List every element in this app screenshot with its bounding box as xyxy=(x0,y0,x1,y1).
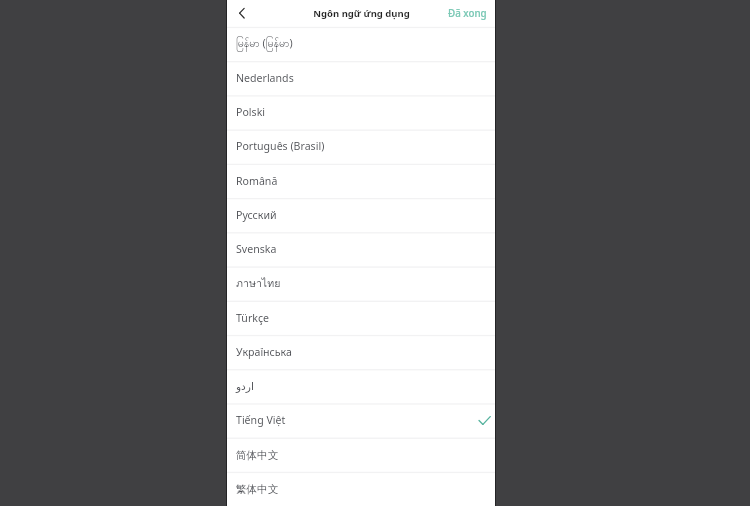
staticText: Română xyxy=(236,174,491,188)
button[interactable]: Tiếng Việt xyxy=(226,403,496,437)
button[interactable]: Đã xong xyxy=(440,3,496,24)
staticText: Tiếng Việt xyxy=(236,413,478,427)
staticText: Đã xong xyxy=(448,7,487,20)
staticText: မြန်မာ (မြန်မာ) xyxy=(236,36,491,53)
staticText: Українська xyxy=(236,345,491,359)
staticText: اردو xyxy=(236,380,491,392)
staticText: 简体中文 xyxy=(236,449,491,462)
staticText: Svenska xyxy=(236,242,491,256)
button[interactable]: Nederlands xyxy=(226,61,496,95)
button[interactable]: ภาษาไทย xyxy=(226,266,496,300)
button[interactable]: Svenska xyxy=(226,232,496,266)
button[interactable]: Українська xyxy=(226,335,496,369)
staticText: Русский xyxy=(236,208,491,222)
button[interactable]: Back xyxy=(232,4,252,24)
staticText: Ngôn ngữ ứng dụng xyxy=(313,7,410,20)
button[interactable]: Română xyxy=(226,164,496,198)
staticText: Türkçe xyxy=(236,311,491,325)
staticText: 繁体中文 xyxy=(236,483,491,496)
staticText: Nederlands xyxy=(236,71,491,85)
button[interactable]: 繁体中文 xyxy=(226,472,496,506)
button[interactable]: Türkçe xyxy=(226,301,496,335)
button[interactable]: Polski xyxy=(226,95,496,129)
button[interactable]: မြန်မာ (မြန်မာ) xyxy=(226,27,496,61)
staticText: Polski xyxy=(236,105,491,119)
button[interactable]: Português (Brasil) xyxy=(226,129,496,163)
button[interactable]: 简体中文 xyxy=(226,438,496,472)
staticText: ภาษาไทย xyxy=(236,275,491,292)
staticText: Português (Brasil) xyxy=(236,139,491,153)
button[interactable]: اردو xyxy=(226,369,496,403)
button[interactable]: Русский xyxy=(226,198,496,232)
